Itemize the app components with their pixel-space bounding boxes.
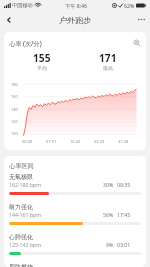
staticText: 心肺强化 [9,233,33,241]
button[interactable]: 耐力强化 [9,203,141,233]
button[interactable]: More options [133,11,150,28]
staticText: 31:28 [118,139,129,144]
staticText: 07:51 [46,139,57,144]
button[interactable]: 脂肪燃烧 [9,263,141,267]
staticText: 56% [103,211,114,218]
staticText: 125-143 bpm [9,241,42,248]
staticText: 心率 (次/分) [9,39,42,47]
staticText: 62% [124,2,135,9]
staticText: 9% [106,241,114,248]
staticText: 最高 [103,65,113,71]
staticText: 140 [11,107,18,112]
staticText: 中国移动 [12,2,33,9]
button[interactable]: 心肺强化 [9,233,141,263]
staticText: 下午 8:46 [65,2,88,9]
staticText: 户外跑步 [59,15,91,25]
staticText: 心率区间 [9,162,34,170]
staticText: 脂肪燃烧 [9,263,33,267]
button[interactable]: 无氧极限 [9,173,141,203]
staticText: 15:42 [70,139,81,144]
staticText: 155 [33,51,51,65]
staticText: 23:33 [94,139,105,144]
staticText: 00:00 [22,139,33,144]
staticText: 162-180 bpm [9,181,42,188]
staticText: 100 [11,131,18,136]
staticText: 平均 [37,65,47,71]
staticText: 160 [11,94,18,99]
staticText: 03:01 [117,241,131,248]
staticText: 09:35 [117,181,131,188]
staticText: 171 [99,51,117,65]
staticText: 17:45 [117,211,131,218]
staticText: 180 [11,82,18,87]
button[interactable]: Back [0,11,17,28]
button[interactable]: Expand chart [132,38,141,47]
staticText: 120 [11,119,18,124]
staticText: 耐力强化 [9,203,33,211]
staticText: 30% [103,181,114,188]
staticText: 无氧极限 [9,173,33,181]
staticText: 144-161 bpm [9,211,42,218]
